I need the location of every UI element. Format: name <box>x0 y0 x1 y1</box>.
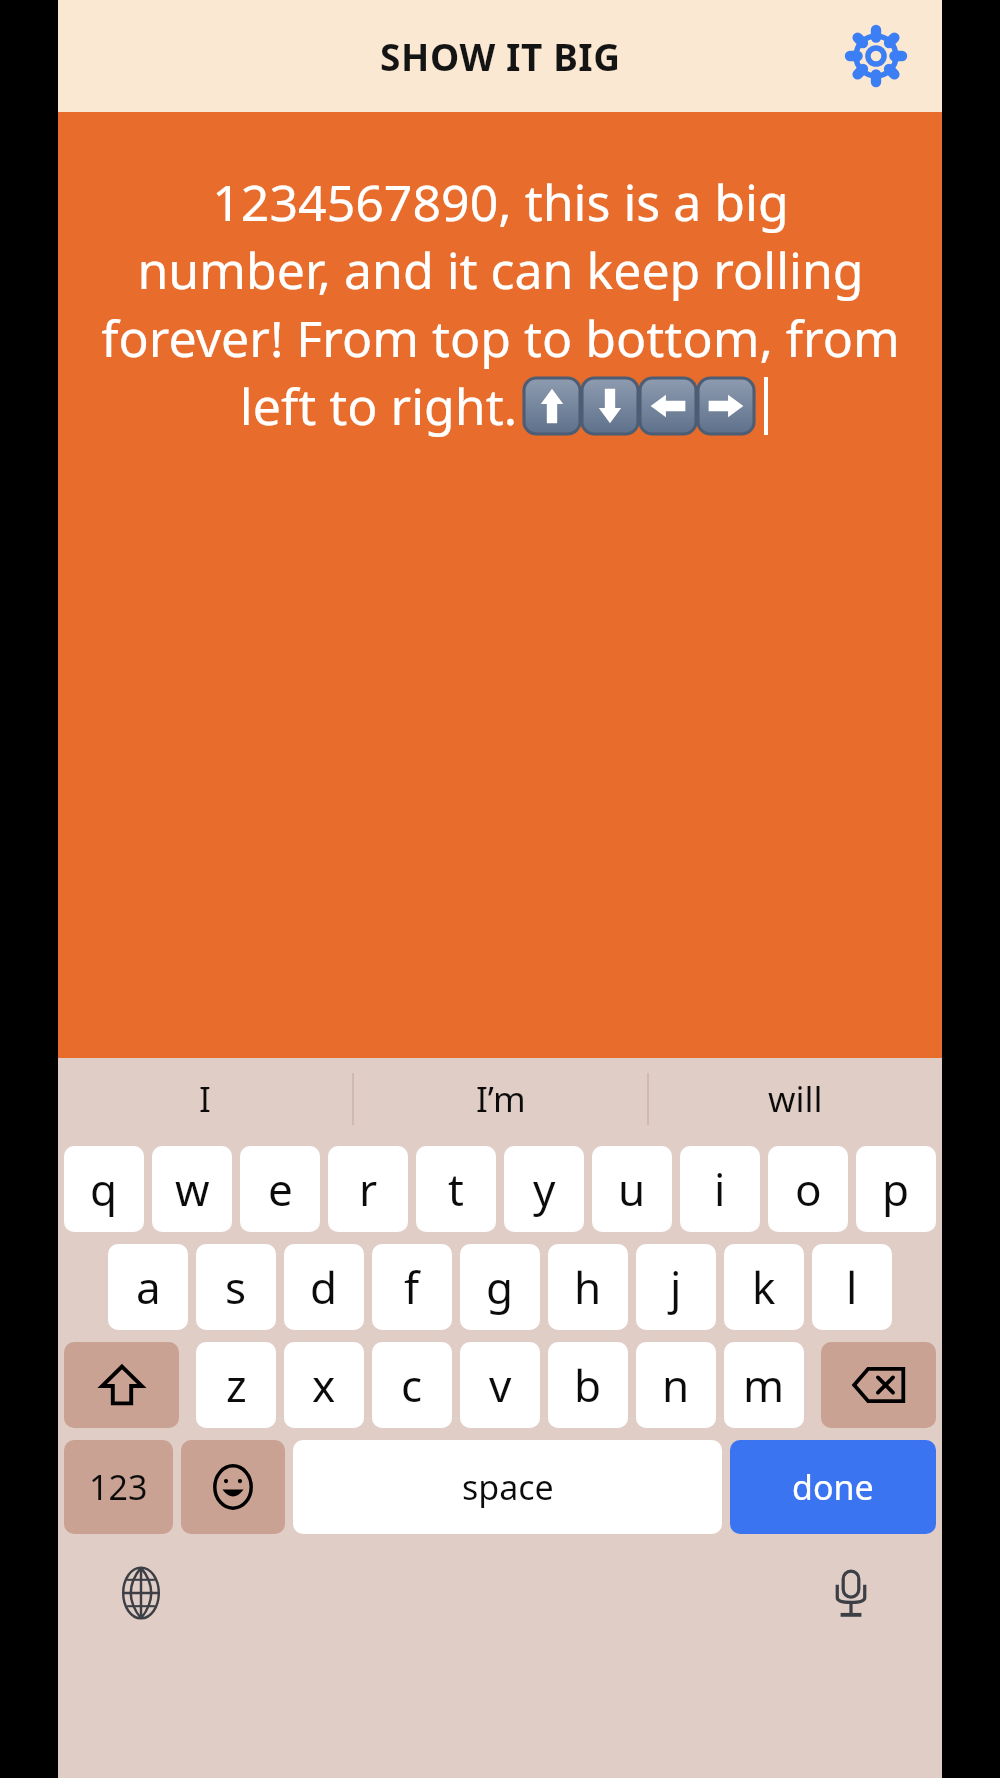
staticText: a <box>136 1257 161 1317</box>
staticText: x <box>312 1355 336 1415</box>
button[interactable]: s <box>196 1244 276 1330</box>
staticText: f <box>404 1257 420 1317</box>
staticText: forever! From top to bottom, from <box>101 304 900 372</box>
button[interactable]: I <box>58 1058 352 1140</box>
staticText: left to right. <box>233 372 524 440</box>
button[interactable]: z <box>196 1342 276 1428</box>
staticText: s <box>225 1257 247 1317</box>
staticText: v <box>489 1355 512 1415</box>
staticText: will <box>768 1075 823 1123</box>
staticText: number, and it can keep rolling <box>137 236 864 304</box>
button[interactable]: r <box>328 1146 408 1232</box>
staticText: h <box>574 1257 602 1317</box>
staticText: w <box>175 1159 210 1219</box>
staticText: g <box>486 1257 514 1317</box>
button[interactable]: g <box>460 1244 540 1330</box>
button[interactable]: Shift <box>64 1342 179 1428</box>
staticText: b <box>574 1355 602 1415</box>
button[interactable]: p <box>856 1146 936 1232</box>
button[interactable]: y <box>504 1146 584 1232</box>
button[interactable]: m <box>724 1342 804 1428</box>
staticText: j <box>670 1257 682 1317</box>
button[interactable]: t <box>416 1146 496 1232</box>
button[interactable]: i <box>680 1146 760 1232</box>
button[interactable]: I’m <box>354 1058 647 1140</box>
button[interactable]: o <box>768 1146 848 1232</box>
staticText: I’m <box>476 1075 526 1123</box>
button[interactable]: c <box>372 1342 452 1428</box>
button[interactable]: u <box>592 1146 672 1232</box>
staticText: 1234567890, this is a big <box>212 168 789 236</box>
staticText: I <box>199 1075 211 1123</box>
button[interactable]: Backspace <box>821 1342 936 1428</box>
button[interactable]: Emoji <box>181 1440 285 1534</box>
staticText: c <box>401 1355 423 1415</box>
staticText: z <box>226 1355 247 1415</box>
staticText: r <box>359 1159 378 1219</box>
staticText: SHOW IT BIG <box>380 31 621 81</box>
staticText: y <box>533 1159 556 1219</box>
staticText: p <box>882 1159 910 1219</box>
button[interactable]: v <box>460 1342 540 1428</box>
button[interactable]: 123 <box>64 1440 173 1534</box>
staticText: e <box>268 1159 293 1219</box>
staticText: space <box>462 1464 554 1510</box>
staticText: t <box>448 1159 464 1219</box>
staticText: q <box>90 1159 118 1219</box>
button[interactable]: h <box>548 1244 628 1330</box>
staticText: k <box>752 1257 776 1317</box>
button[interactable]: d <box>284 1244 364 1330</box>
staticText: 123 <box>89 1464 148 1510</box>
button[interactable]: j <box>636 1244 716 1330</box>
button[interactable]: w <box>152 1146 232 1232</box>
button[interactable]: b <box>548 1342 628 1428</box>
button[interactable]: Change language <box>106 1558 176 1628</box>
button[interactable]: space <box>293 1440 722 1534</box>
staticText: o <box>795 1159 822 1219</box>
button[interactable]: n <box>636 1342 716 1428</box>
button[interactable]: q <box>64 1146 144 1232</box>
button[interactable]: done <box>730 1440 936 1534</box>
staticText: l <box>846 1257 858 1317</box>
staticText: m <box>743 1355 785 1415</box>
button[interactable]: f <box>372 1244 452 1330</box>
button[interactable]: k <box>724 1244 804 1330</box>
staticText: d <box>310 1257 338 1317</box>
button[interactable]: Settings <box>838 18 914 94</box>
button[interactable]: a <box>108 1244 188 1330</box>
staticText: done <box>792 1464 874 1510</box>
staticText: u <box>618 1159 646 1219</box>
button[interactable]: l <box>812 1244 892 1330</box>
staticText: n <box>662 1355 690 1415</box>
button[interactable]: x <box>284 1342 364 1428</box>
button[interactable]: will <box>649 1058 942 1140</box>
button[interactable]: Voice input <box>816 1558 886 1628</box>
button[interactable]: e <box>240 1146 320 1232</box>
staticText: i <box>714 1159 726 1219</box>
